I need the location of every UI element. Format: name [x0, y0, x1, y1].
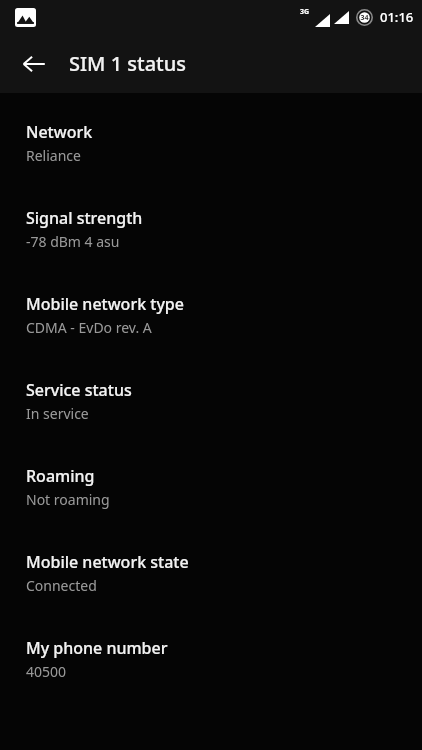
button[interactable]: My phone number [0, 633, 422, 719]
button[interactable]: Roaming [0, 461, 422, 547]
staticText: Service status [26, 379, 132, 401]
staticText: Not roaming [26, 490, 110, 509]
staticText: -78 dBm 4 asu [26, 232, 120, 251]
staticText: CDMA - EvDo rev. A [26, 318, 152, 337]
staticText: Signal strength [26, 207, 143, 229]
staticText: Roaming [26, 465, 95, 487]
button[interactable]: Signal strength [0, 203, 422, 289]
staticText: 3G [300, 7, 310, 17]
staticText: My phone number [26, 637, 168, 659]
staticText: 40500 [26, 662, 67, 681]
staticText: 01:16 [380, 8, 414, 26]
button[interactable]: Back [10, 40, 58, 88]
staticText: Connected [26, 576, 97, 595]
button[interactable]: Network [0, 117, 422, 203]
staticText: Mobile network state [26, 551, 189, 573]
staticText: In service [26, 404, 89, 423]
staticText: Mobile network type [26, 293, 184, 315]
button[interactable]: Mobile network state [0, 547, 422, 633]
staticText: 34 [360, 13, 369, 23]
staticText: Network [26, 121, 93, 143]
button[interactable]: Service status [0, 375, 422, 461]
staticText: Reliance [26, 146, 81, 165]
staticText: SIM 1 status [69, 50, 187, 77]
button[interactable]: Mobile network type [0, 289, 422, 375]
